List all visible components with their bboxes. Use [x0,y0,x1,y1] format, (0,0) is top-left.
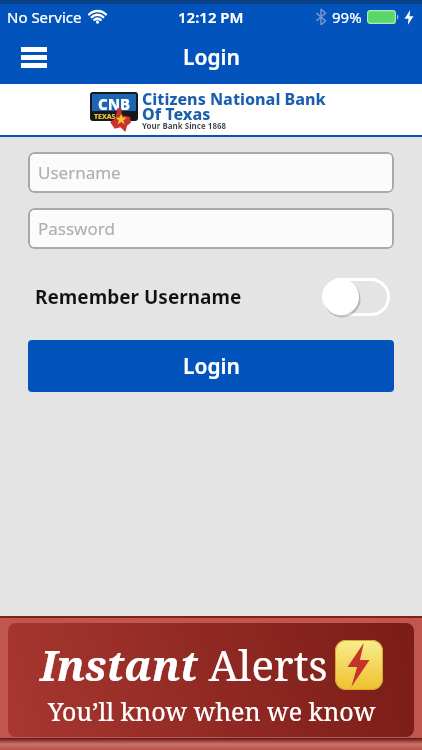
staticText: CNB [98,94,131,111]
staticText: Your Bank Since 1868 [142,120,227,131]
staticText: No Service [7,7,82,27]
staticText: Login [183,352,240,381]
staticText: 99% [332,7,362,27]
button[interactable]: Username [28,152,394,193]
staticText: TEXAS [94,112,116,122]
button[interactable]: Password [28,208,394,249]
staticText: Remember Username [35,284,242,310]
button[interactable]: Login [28,340,394,392]
staticText: You’ll know when we know [48,694,376,728]
staticText: 12:12 PM [178,7,244,27]
button[interactable] [322,278,390,316]
staticText: Citizens National Bank [142,88,326,110]
staticText: Login [183,43,240,72]
staticText: Of Texas [142,103,211,125]
button[interactable]: Instant Alerts [0,616,422,750]
button[interactable] [21,47,47,68]
staticText: Username [38,161,121,184]
staticText: Instant Alerts [40,636,328,693]
staticText: Password [38,217,115,240]
